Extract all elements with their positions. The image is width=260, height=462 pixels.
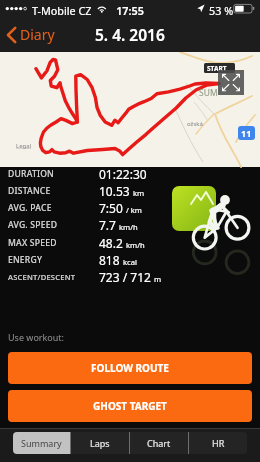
staticText: m (154, 274, 162, 284)
button[interactable]: Summary (13, 432, 70, 454)
staticText: km (133, 188, 145, 198)
button[interactable]: Diary (0, 21, 63, 48)
staticText: 10.53 (99, 183, 130, 199)
staticText: 48.2 (99, 235, 123, 251)
staticText: / km (126, 205, 142, 215)
staticText: 7:50 (99, 200, 123, 216)
button[interactable]: GHOST TARGET (8, 390, 252, 422)
button[interactable]: Expand map (218, 70, 244, 95)
staticText: 723 / 712 (99, 269, 151, 285)
staticText: 53 % (209, 3, 234, 18)
staticText: 01:22:30 (99, 166, 147, 182)
staticText: DURATION (8, 168, 54, 180)
staticText: AVG. PACE (8, 202, 52, 214)
staticText: FOLLOW ROUTE (91, 361, 169, 375)
button[interactable]: HR (189, 432, 247, 454)
staticText: AVG. SPEED (8, 219, 58, 231)
staticText: km/h (126, 240, 145, 250)
staticText: km/h (119, 222, 138, 232)
staticText: T-Mobile CZ (32, 3, 92, 18)
staticText: Chart (147, 437, 171, 449)
staticText: Laps (90, 437, 110, 449)
staticText: ožská (187, 120, 203, 128)
staticText: DISTANCE (8, 185, 51, 197)
staticText: Legal (16, 142, 32, 150)
staticText: Diary (20, 25, 55, 44)
staticText: 11 (241, 127, 252, 139)
staticText: GHOST TARGET (93, 399, 167, 413)
button[interactable]: Chart (130, 432, 188, 454)
staticText: 5. 4. 2016 (95, 24, 165, 45)
staticText: HR (212, 437, 225, 449)
staticText: Summary (21, 437, 62, 449)
button[interactable]: FOLLOW ROUTE (8, 352, 252, 384)
staticText: SUM (199, 87, 218, 99)
staticText: Use workout: (8, 331, 65, 343)
button[interactable]: Laps (71, 432, 129, 454)
staticText: 818 (99, 252, 120, 268)
staticText: ASCENT/DESCENT (8, 272, 76, 282)
staticText: 7.7 (99, 217, 116, 233)
staticText: kcal (123, 257, 137, 267)
staticText: ENERGY (8, 254, 43, 266)
staticText: 17:55 (0, 3, 260, 18)
staticText: START (207, 64, 227, 73)
staticText: MAX SPEED (8, 237, 57, 249)
